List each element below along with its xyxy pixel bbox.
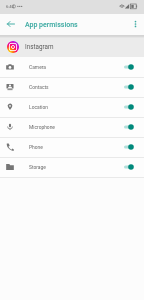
button[interactable]: Storage xyxy=(0,157,144,177)
button[interactable]: Microphone xyxy=(0,117,144,137)
staticText: Contacts xyxy=(29,84,49,90)
staticText: App permissions xyxy=(25,21,78,29)
button[interactable]: Camera xyxy=(0,57,144,77)
button[interactable]: Phone xyxy=(0,137,144,157)
staticText: Camera xyxy=(29,64,46,70)
staticText: Location xyxy=(29,104,48,110)
staticText: Storage xyxy=(29,164,46,170)
button[interactable]: Contacts xyxy=(0,77,144,97)
button[interactable]: More options xyxy=(127,15,144,32)
staticText: Instagram xyxy=(25,43,54,50)
button[interactable]: Navigate up xyxy=(2,15,20,33)
staticText: Microphone xyxy=(29,124,55,130)
staticText: 6:44 xyxy=(6,4,15,9)
button[interactable]: Location xyxy=(0,97,144,117)
staticText: Phone xyxy=(29,144,43,150)
button[interactable]: Instagram xyxy=(0,36,144,57)
